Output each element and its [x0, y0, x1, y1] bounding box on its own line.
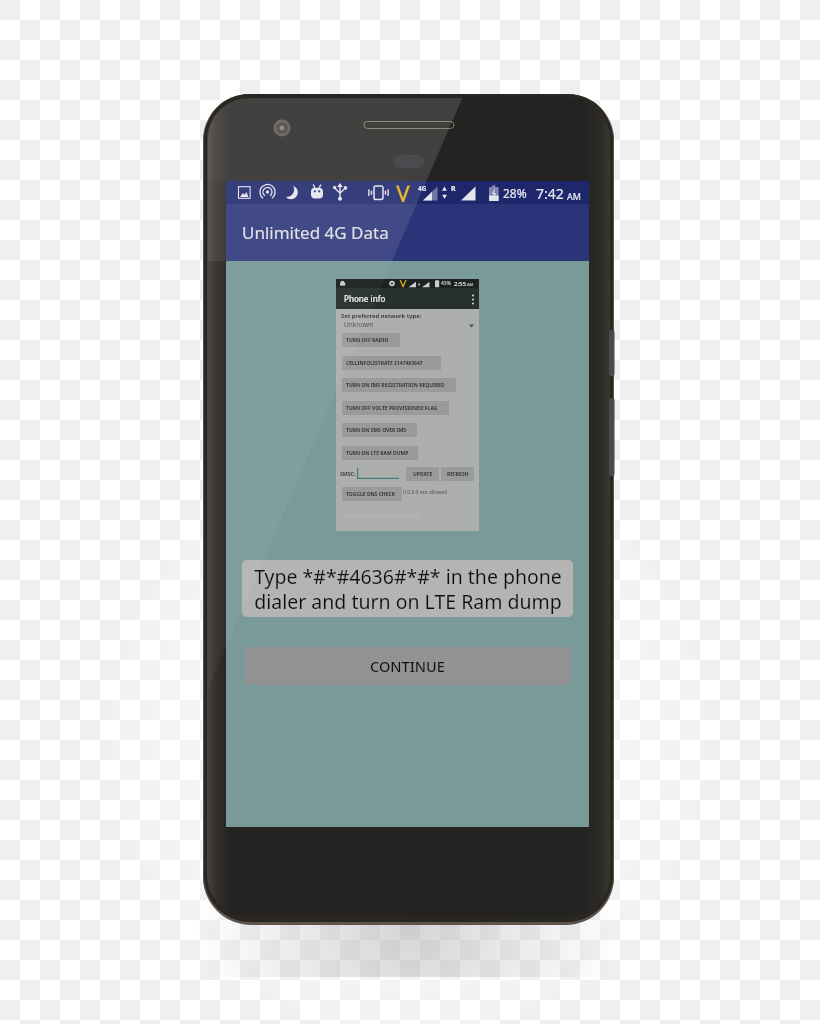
staticText: AM — [567, 190, 581, 202]
button[interactable]: CONTINUE — [245, 647, 570, 685]
button[interactable]: More options — [466, 291, 479, 308]
staticText: CELLINFOLISTRATE 2147483647 — [346, 360, 423, 367]
button[interactable]: TOGGLE DNS CHECK — [342, 487, 402, 501]
button[interactable]: Type *#*#4636#*#* in the phone dialer an… — [242, 560, 573, 617]
other: Screenshot of the Android Phone info tes… — [336, 279, 479, 531]
staticText: TURN OFF VOLTE PROVISIONED FLAG — [346, 405, 438, 412]
button[interactable]: TURN ON SMS OVER IMS — [342, 423, 417, 437]
staticText: Phone info — [344, 293, 386, 304]
staticText: TURN ON IMS REGISTRATION REQUIRED — [346, 382, 445, 389]
button[interactable]: TURN OFF VOLTE PROVISIONED FLAG — [342, 401, 449, 415]
staticText: TOGGLE DNS CHECK — [346, 491, 396, 498]
staticText: 43% — [441, 280, 451, 287]
button[interactable]: REFRESH — [441, 467, 474, 481]
button[interactable]: TURN ON LTE RAM DUMP — [342, 446, 418, 460]
staticText: CONTINUE — [370, 656, 445, 676]
staticText: 28% — [503, 185, 527, 201]
staticText: TURN ON SMS OVER IMS — [346, 427, 407, 434]
staticText: TURN OFF RADIO — [346, 337, 389, 344]
staticText: SMSC: — [340, 470, 356, 477]
staticText: 2:55 — [454, 280, 466, 288]
staticText: AM — [467, 282, 474, 287]
staticText: R — [451, 184, 456, 194]
staticText: Type *#*#4636#*#* in the phone dialer an… — [254, 563, 562, 614]
button[interactable]: TURN OFF RADIO — [342, 333, 400, 347]
staticText: TURN ON LTE RAM DUMP — [346, 450, 409, 457]
staticText: Set preferred network type: — [341, 312, 422, 320]
button[interactable]: Unlimited 4G Data — [226, 204, 589, 261]
staticText: Unlimited 4G Data — [242, 221, 389, 244]
staticText: UPDATE — [413, 471, 433, 478]
staticText: Unknown — [344, 320, 374, 329]
button[interactable]: UPDATE — [406, 467, 439, 481]
button[interactable]: TURN ON IMS REGISTRATION REQUIRED — [342, 378, 456, 392]
button[interactable]: CELLINFOLISTRATE 2147483647 — [342, 356, 441, 370]
staticText: 7:42 — [536, 184, 564, 203]
staticText: 4G — [418, 184, 427, 193]
staticText: REFRESH — [447, 471, 469, 478]
staticText: 0.0.0.0 not allowed — [403, 489, 448, 496]
